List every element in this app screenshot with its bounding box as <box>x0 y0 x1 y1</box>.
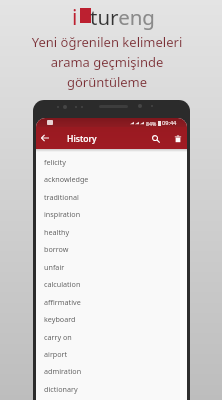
staticText: keyboard <box>44 314 76 324</box>
button[interactable]: admiration <box>36 362 187 379</box>
staticText: affirmative <box>44 297 81 307</box>
staticText: Yeni öğrenilen kelimeleri arama geçmişin… <box>0 33 218 91</box>
staticText: dictionary <box>44 384 78 394</box>
staticText: felicity <box>44 157 66 167</box>
staticText: 09:44 <box>162 119 177 127</box>
staticText: calculation <box>44 279 81 289</box>
staticText: tureng <box>90 3 155 31</box>
button[interactable]: healthy <box>36 223 187 240</box>
button[interactable]: carry on <box>36 328 187 345</box>
button[interactable]: acknowledge <box>36 170 187 187</box>
button[interactable]: Back <box>38 131 52 145</box>
staticText: i <box>72 3 78 32</box>
button[interactable]: inspiration <box>36 205 187 222</box>
button[interactable]: borrow <box>36 240 187 257</box>
staticText: airport <box>44 349 68 359</box>
button[interactable]: Delete history <box>170 131 185 146</box>
staticText: acknowledge <box>44 174 89 184</box>
button[interactable]: airport <box>36 345 187 362</box>
staticText: 84% <box>146 120 157 127</box>
button[interactable]: unfair <box>36 258 187 275</box>
staticText: admiration <box>44 366 82 376</box>
staticText: carry on <box>44 332 72 342</box>
staticText: traditional <box>44 192 79 202</box>
button[interactable]: Search <box>148 131 163 146</box>
staticText: unfair <box>44 262 65 272</box>
button[interactable]: affirmative <box>36 293 187 310</box>
staticText: borrow <box>44 244 69 254</box>
button[interactable]: traditional <box>36 188 187 205</box>
button[interactable]: calculation <box>36 275 187 292</box>
button[interactable]: dictionary <box>36 380 187 397</box>
button[interactable]: felicity <box>36 153 187 170</box>
button[interactable]: keyboard <box>36 310 187 327</box>
staticText: History <box>67 133 97 145</box>
staticText: inspiration <box>44 209 81 219</box>
staticText: healthy <box>44 227 70 237</box>
